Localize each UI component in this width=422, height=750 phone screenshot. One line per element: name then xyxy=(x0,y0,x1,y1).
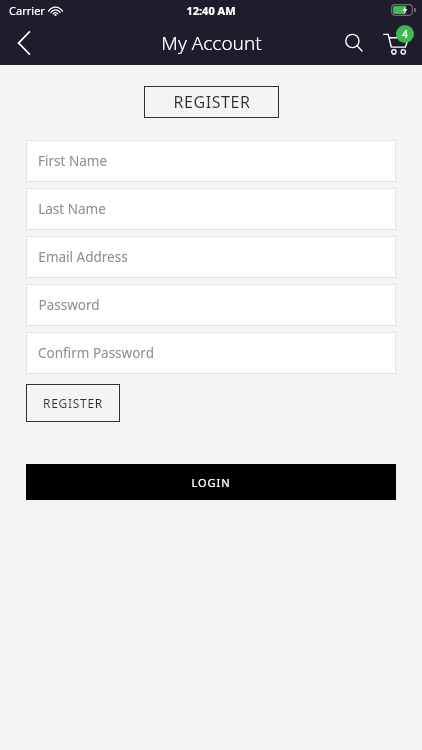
button[interactable]: Back xyxy=(0,20,48,65)
staticText: 12:40 AM xyxy=(186,3,236,18)
staticText: LOGIN xyxy=(191,475,231,490)
staticText: Confirm Password xyxy=(38,344,154,362)
staticText: Last Name xyxy=(38,200,106,218)
button[interactable]: Cart, 4 items xyxy=(374,21,418,65)
staticText: Email Address xyxy=(38,248,128,266)
staticText: First Name xyxy=(38,152,107,170)
button[interactable]: REGISTER xyxy=(144,86,279,118)
button[interactable]: Password xyxy=(26,284,396,326)
button[interactable]: Email Address xyxy=(26,236,396,278)
staticText: REGISTER xyxy=(43,395,103,411)
staticText: Password xyxy=(38,296,100,314)
button[interactable]: Search xyxy=(334,23,374,63)
staticText: Carrier xyxy=(9,3,45,18)
button[interactable]: First Name xyxy=(26,140,396,182)
staticText: My Account xyxy=(161,30,262,56)
staticText: REGISTER xyxy=(173,91,251,113)
staticText: 4 xyxy=(402,27,408,41)
button[interactable]: Last Name xyxy=(26,188,396,230)
button[interactable]: Confirm Password xyxy=(26,332,396,374)
button[interactable]: REGISTER xyxy=(26,384,120,422)
button[interactable]: LOGIN xyxy=(26,464,396,500)
